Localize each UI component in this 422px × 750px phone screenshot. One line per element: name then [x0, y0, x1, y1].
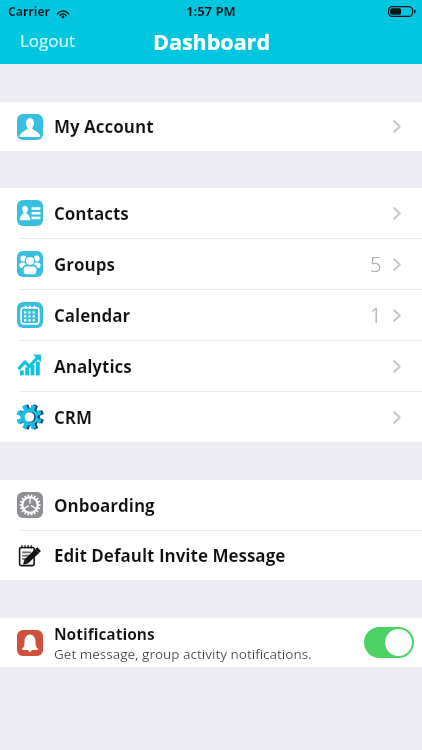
staticText: Groups [54, 253, 115, 276]
staticText: Dashboard [153, 27, 270, 56]
staticText: Edit Default Invite Message [54, 544, 286, 567]
button[interactable]: Groups [0, 239, 422, 289]
staticText: Onboarding [54, 494, 155, 517]
staticText: Get message, group activity notification… [54, 645, 312, 663]
button[interactable]: Notifications toggle [364, 627, 414, 658]
staticText: Analytics [54, 355, 132, 378]
staticText: 5 [370, 251, 382, 278]
staticText: Notifications [54, 623, 155, 644]
button[interactable]: My Account [0, 102, 422, 151]
button[interactable]: Analytics [0, 341, 422, 391]
button[interactable]: Edit Default Invite Message [0, 531, 422, 580]
staticText: Contacts [54, 202, 129, 225]
button[interactable]: Onboarding [0, 480, 422, 530]
button[interactable]: Contacts [0, 188, 422, 238]
button[interactable]: Calendar [0, 290, 422, 340]
staticText: 1 [370, 302, 382, 329]
staticText: My Account [54, 115, 154, 138]
button[interactable]: Notifications [0, 618, 422, 667]
staticText: Calendar [54, 304, 131, 327]
staticText: CRM [54, 406, 93, 429]
staticText: Carrier [8, 3, 50, 19]
button[interactable]: Logout [10, 22, 86, 58]
staticText: 1:57 PM [186, 2, 236, 20]
staticText: Logout [20, 29, 76, 52]
button[interactable]: CRM [0, 392, 422, 442]
